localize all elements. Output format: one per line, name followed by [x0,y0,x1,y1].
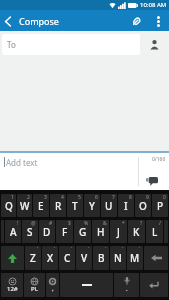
button[interactable]: Z [25,246,41,270]
button[interactable]: B [93,246,109,270]
staticText: , [52,285,54,293]
staticText: Z [30,251,36,265]
button[interactable]: Y [84,194,100,217]
staticText: V [81,251,88,265]
button[interactable]: J [110,220,127,243]
staticText: 10:08 AM [140,1,167,9]
button[interactable]: , [46,273,59,297]
button[interactable]: H [92,220,109,243]
staticText: W [20,199,30,213]
staticText: Y [89,199,95,213]
staticText: Q [5,199,13,213]
staticText: * [122,220,125,227]
button[interactable]: Q [1,194,16,217]
staticText: 5 [78,194,81,201]
button[interactable] [5,14,19,28]
button[interactable]: I [118,194,134,217]
staticText: B [98,251,105,265]
button[interactable]: M [127,246,143,270]
button[interactable]: T [67,194,83,217]
staticText: 4 [61,194,64,201]
staticText: O [139,199,147,213]
staticText: ´ [37,246,39,253]
button[interactable] [140,31,169,58]
button[interactable] [140,273,168,297]
button[interactable] [128,13,144,29]
staticText: R [55,199,62,213]
button[interactable] [144,246,168,270]
button[interactable]: P [152,194,168,217]
staticText: ´ [122,246,124,253]
staticText: . [126,285,128,293]
staticText: M [130,251,140,265]
button[interactable]: C [59,246,75,270]
button[interactable]: G [74,220,91,243]
button[interactable] [152,15,164,27]
staticText: J [117,225,120,239]
button[interactable]: X [42,246,58,270]
button[interactable]: . [114,273,139,297]
button[interactable]: W [17,194,32,217]
staticText: # [49,220,53,227]
button[interactable]: 0/160 [139,153,169,190]
button[interactable]: E [33,194,49,217]
staticText: 8 [129,194,132,201]
staticText: ? [140,220,143,227]
staticText: F [62,225,68,239]
staticText: S [27,225,33,239]
staticText: A [10,225,17,239]
staticText: 7 [112,194,115,201]
button[interactable]: D [39,220,55,243]
button[interactable]: 12# [1,273,23,297]
staticText: ´ [139,246,141,253]
staticText: / [159,220,161,227]
staticText: % [84,220,89,227]
staticText: PL [31,285,38,293]
staticText: 1 [11,194,14,201]
staticText: & [103,220,107,227]
staticText: Add text [6,157,38,168]
staticText: 3 [44,194,47,201]
staticText: $ [68,220,71,227]
button[interactable]: To [2,34,140,55]
staticText: G [79,225,87,239]
staticText: L [152,225,158,239]
staticText: N [114,251,122,265]
staticText: P [157,199,164,213]
staticText: D [43,225,51,239]
button[interactable]: N [110,246,126,270]
button[interactable]: L [146,220,163,243]
button[interactable]: K [128,220,145,243]
staticText: K [133,225,140,239]
button[interactable]: Add text [0,153,138,190]
staticText: ´ [71,246,73,253]
staticText: ´ [105,246,107,253]
staticText: Compose [19,15,59,27]
staticText: 0/160 [152,156,166,163]
staticText: H [97,225,105,239]
staticText: 0 [163,194,166,201]
button[interactable]: PL [24,273,45,297]
button[interactable] [1,246,24,270]
button[interactable]: A [5,220,21,243]
button[interactable]: V [76,246,92,270]
button[interactable]: O [135,194,151,217]
button[interactable]: U [101,194,117,217]
staticText: @ [31,220,36,227]
button[interactable]: F [56,220,73,243]
staticText: X [47,251,54,265]
staticText: 2 [27,194,30,201]
staticText: To [7,39,16,50]
button[interactable] [60,273,113,297]
staticText: 9 [146,194,149,201]
staticText: C [64,251,71,265]
staticText: ! [17,220,19,227]
staticText: U [105,199,113,213]
button[interactable]: R [50,194,66,217]
staticText: 6 [95,194,98,201]
staticText: I [124,199,128,213]
button[interactable]: S [22,220,38,243]
staticText: E [38,199,44,213]
